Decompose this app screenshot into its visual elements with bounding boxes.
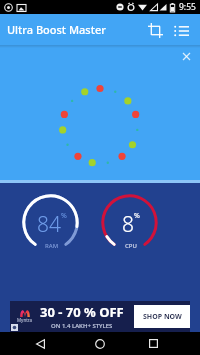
button[interactable]: Back [27,332,54,355]
button[interactable]: Close [176,46,196,66]
button[interactable]: Recents [140,332,167,355]
button[interactable]: 8 [101,194,158,251]
button[interactable]: 84 [22,194,79,251]
staticText: CPU [125,242,137,250]
button[interactable]: SHOP NOW [134,305,190,328]
staticText: SHOP NOW [143,312,182,322]
staticText: % [134,211,140,221]
button[interactable]: Crop [143,18,167,42]
staticText: 30 - 70 % OFF [40,303,124,321]
staticText: RAM [45,242,59,250]
staticText: Ultra Boost Master [7,22,106,37]
button[interactable]: Myntra [10,301,190,332]
staticText: 84 [37,210,61,239]
staticText: 9:55 [179,1,196,13]
staticText: 8 [122,210,134,239]
staticText: % [61,211,67,221]
button[interactable]: Menu [169,18,193,42]
staticText: ON 1.4 LAKH+ STYLES [51,322,113,330]
staticText: Myntra [17,317,33,323]
button[interactable]: Home [86,332,113,355]
